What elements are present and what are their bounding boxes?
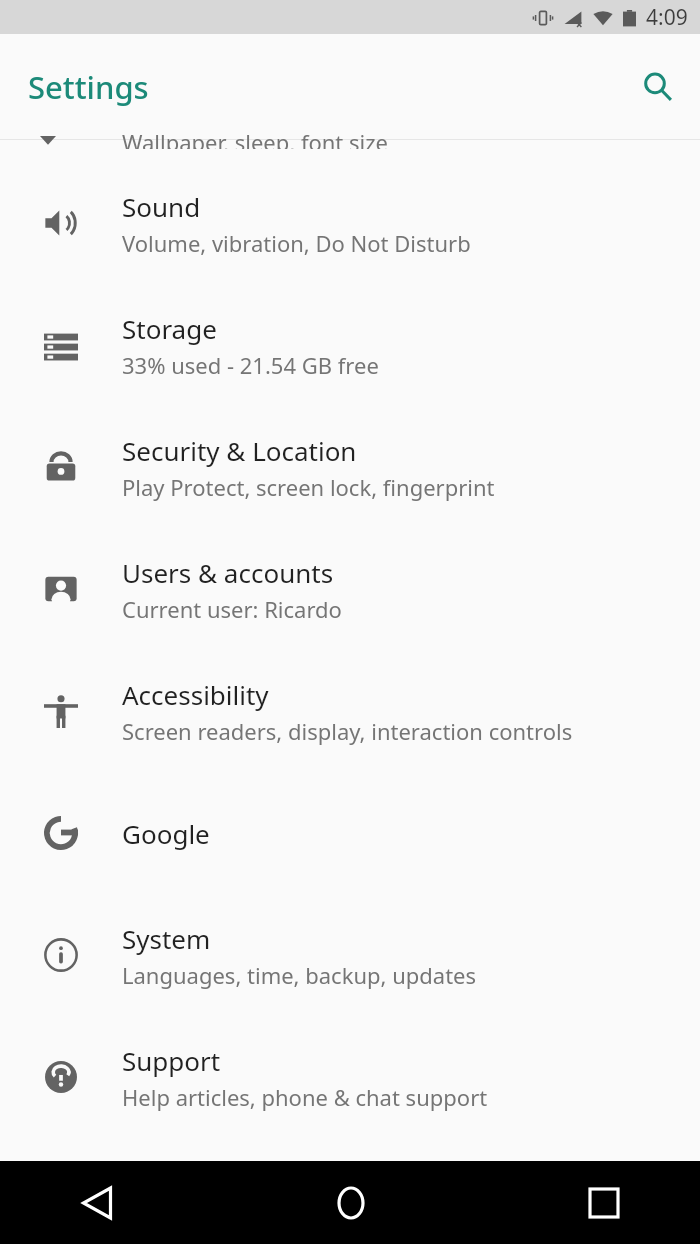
staticText: Google <box>122 816 210 851</box>
staticText: Languages, time, backup, updates <box>122 960 477 990</box>
staticText: System <box>122 921 211 956</box>
button[interactable]: Security & Location <box>0 406 700 528</box>
staticText: Wallpaper, sleep, font size <box>122 127 388 149</box>
staticText: Current user: Ricardo <box>122 594 342 624</box>
staticText: 4:09 <box>646 3 688 32</box>
button[interactable]: Recents <box>467 1161 700 1244</box>
staticText: 33% used - 21.54 GB free <box>122 350 379 380</box>
staticText: Security & Location <box>122 433 357 468</box>
button[interactable]: Sound <box>0 162 700 284</box>
button[interactable]: Storage <box>0 284 700 406</box>
staticText: Screen readers, display, interaction con… <box>122 716 573 746</box>
button[interactable]: Back <box>0 1161 234 1244</box>
button[interactable]: Support <box>0 1016 700 1138</box>
staticText: Settings <box>28 66 149 108</box>
button[interactable]: Accessibility <box>0 650 700 772</box>
button[interactable]: Search <box>634 63 682 111</box>
staticText: Users & accounts <box>122 555 334 590</box>
button[interactable]: Users & accounts <box>0 528 700 650</box>
staticText: Accessibility <box>122 677 269 712</box>
staticText: Sound <box>122 189 201 224</box>
button[interactable]: Google <box>0 772 700 894</box>
staticText: Help articles, phone & chat support <box>122 1082 488 1112</box>
button[interactable]: System <box>0 894 700 1016</box>
button[interactable]: Home <box>234 1161 467 1244</box>
staticText: Play Protect, screen lock, fingerprint <box>122 472 495 502</box>
staticText: Support <box>122 1043 221 1078</box>
staticText: Volume, vibration, Do Not Disturb <box>122 228 471 258</box>
staticText: Storage <box>122 311 217 346</box>
